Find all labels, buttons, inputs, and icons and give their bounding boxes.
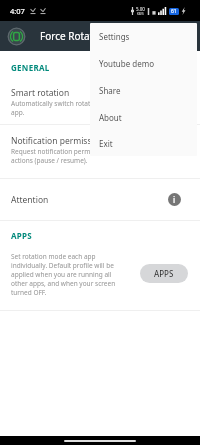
button[interactable]: Youtube demo [90, 50, 197, 77]
staticText: APPS [154, 268, 174, 279]
button[interactable]: Share [90, 77, 197, 104]
button[interactable]: Settings [90, 23, 197, 50]
staticText: Attention [11, 194, 49, 206]
staticText: Share [99, 85, 121, 96]
staticText: Request notification permission to show … [11, 147, 170, 165]
button[interactable]: App icon [7, 27, 26, 46]
staticText: Set rotation mode each app individually.… [11, 252, 129, 297]
button[interactable]: Attention [0, 179, 200, 220]
button[interactable]: Smart rotation [0, 80, 200, 124]
staticText: Youtube demo [99, 58, 155, 69]
staticText: About [99, 112, 122, 123]
staticText: Force Rotation [40, 29, 109, 43]
button[interactable]: APPS [140, 264, 188, 283]
staticText: KB/S [137, 12, 144, 16]
staticText: 5.00 [136, 6, 145, 12]
staticText: Smart rotation [11, 87, 70, 99]
staticText: 61 [171, 8, 177, 15]
button[interactable]: Notification permission [0, 129, 200, 178]
staticText: Settings [99, 31, 130, 42]
staticText: GENERAL [11, 62, 50, 73]
staticText: 4:07 [10, 6, 25, 16]
button[interactable]: About [90, 104, 197, 131]
staticText: i [173, 194, 176, 205]
staticText: Notification permission [11, 135, 105, 147]
button[interactable]: Exit [90, 131, 197, 156]
staticText: Exit [99, 138, 113, 149]
button[interactable]: Information [168, 193, 181, 206]
staticText: APPS [11, 230, 33, 241]
staticText: Automatically switch rotation mode for e… [11, 99, 146, 117]
